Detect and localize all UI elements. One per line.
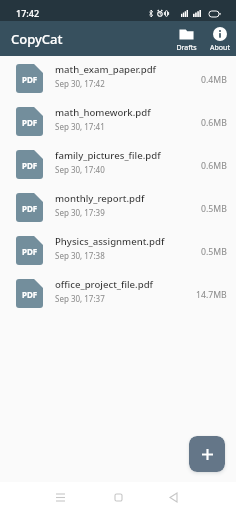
button[interactable]: Home [104,483,132,511]
staticText: 0.5MB [201,203,227,215]
staticText: Sep 30, 17:37 [55,293,105,304]
staticText: 0.6MB [201,117,227,129]
staticText: About [210,43,230,53]
button[interactable]: Add [189,436,225,472]
staticText: 17:42 [16,7,40,19]
staticText: PDF [22,74,38,85]
staticText: PDF [22,160,38,171]
staticText: monthly_report.pdf [55,192,145,205]
button[interactable]: PDF [0,229,236,272]
button[interactable]: About [203,24,236,54]
button[interactable]: Back [159,483,187,511]
staticText: PDF [22,289,38,300]
staticText: CopyCat [11,30,63,48]
button[interactable]: PDF [0,272,236,315]
staticText: 0.4MB [201,74,227,86]
staticText: PDF [22,117,38,128]
staticText: Sep 30, 17:41 [55,121,105,132]
staticText: family_pictures_file.pdf [55,149,161,162]
staticText: Sep 30, 17:38 [55,250,105,261]
staticText: Sep 30, 17:40 [55,164,105,175]
button[interactable]: PDF [0,186,236,229]
staticText: PDF [22,246,38,257]
staticText: office_project_file.pdf [55,278,154,291]
button[interactable]: PDF [0,143,236,186]
button[interactable]: PDF [0,57,236,100]
staticText: Sep 30, 17:39 [55,207,105,218]
staticText: 14.7MB [196,289,227,301]
staticText: math_exam_paper.pdf [55,63,157,76]
button[interactable]: Recent apps [46,483,74,511]
staticText: Sep 30, 17:42 [55,78,105,89]
staticText: math_homework.pdf [55,106,151,119]
staticText: Physics_assignment.pdf [55,235,165,248]
staticText: PDF [22,203,38,214]
staticText: 0.5MB [201,246,227,258]
button[interactable]: Drafts [170,24,203,54]
staticText: Drafts [176,43,197,53]
button[interactable]: PDF [0,100,236,143]
staticText: 0.6MB [201,160,227,172]
